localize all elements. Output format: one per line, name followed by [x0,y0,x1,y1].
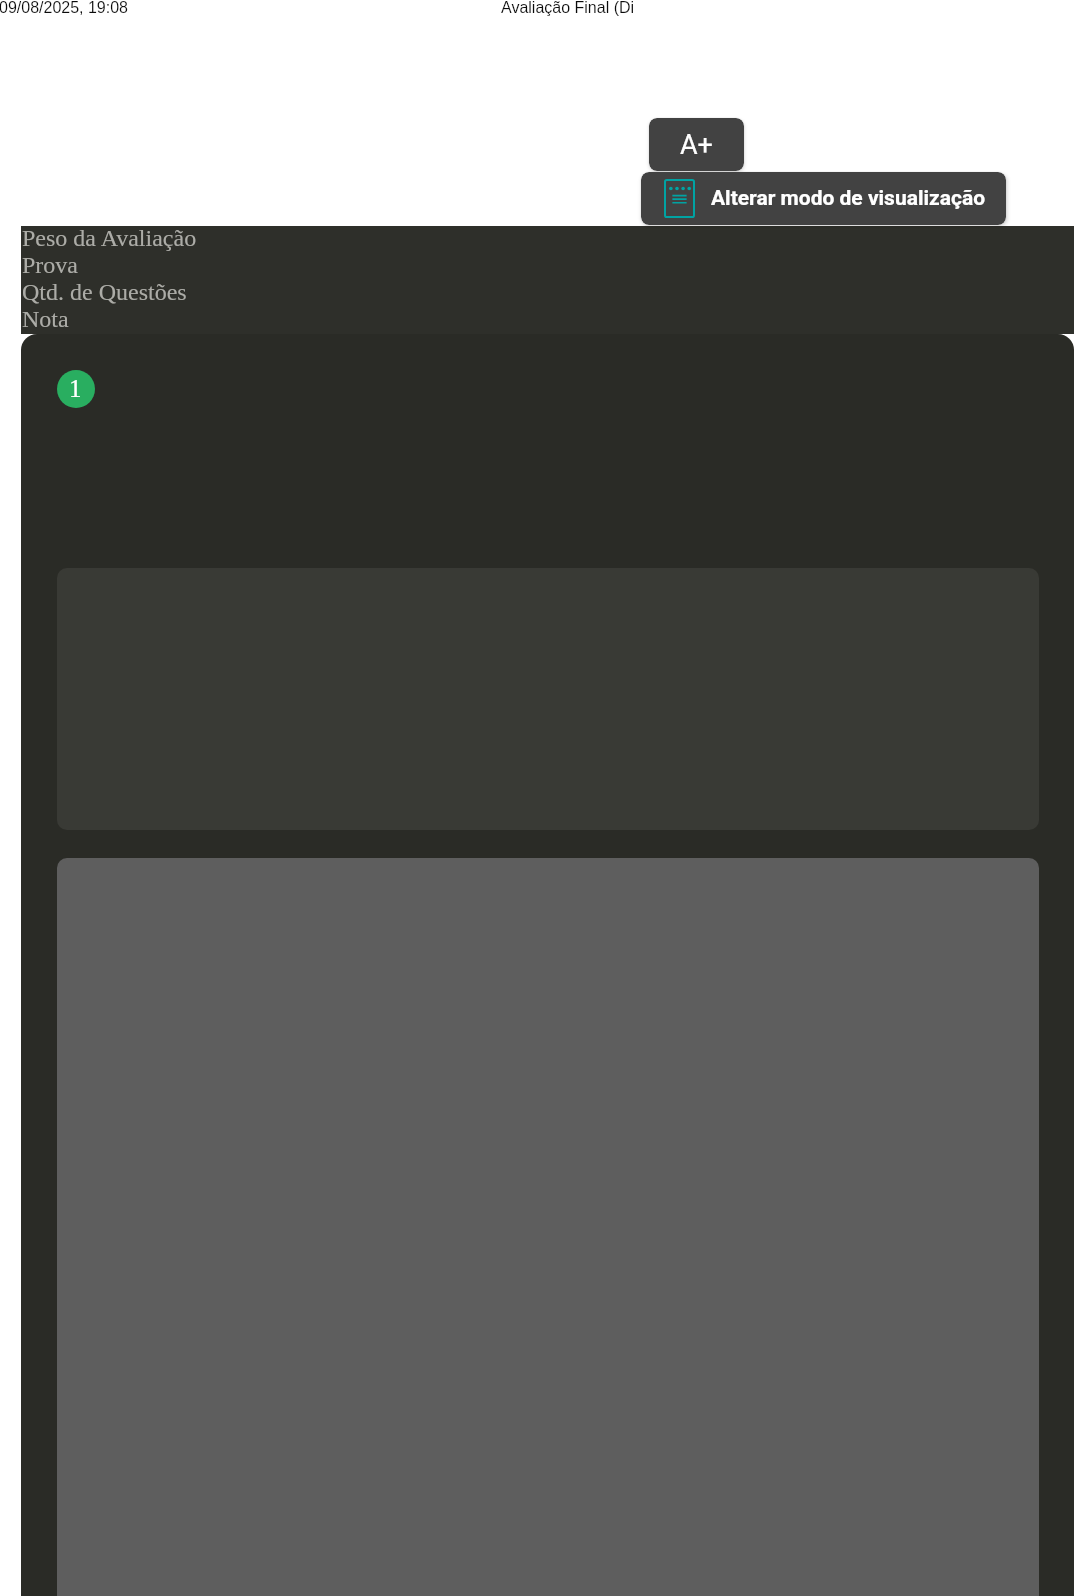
staticText: Qtd. de Questões [22,279,187,306]
staticText: Nota [22,306,69,333]
staticText: Avaliação Final (Di [501,0,635,17]
button[interactable]: 1 [57,370,95,408]
staticText: Prova [22,252,78,279]
staticText: Alterar modo de visualização [711,186,985,211]
staticText: Peso da Avaliação [22,225,197,252]
staticText: A+ [680,129,713,161]
button[interactable]: Alterar modo de visualização [641,172,1006,225]
other: Alterar modo de visualização [664,179,695,218]
staticText: 09/08/2025, 19:08 [0,0,129,17]
staticText: 1 [69,375,82,403]
button[interactable]: A+ [649,118,744,171]
